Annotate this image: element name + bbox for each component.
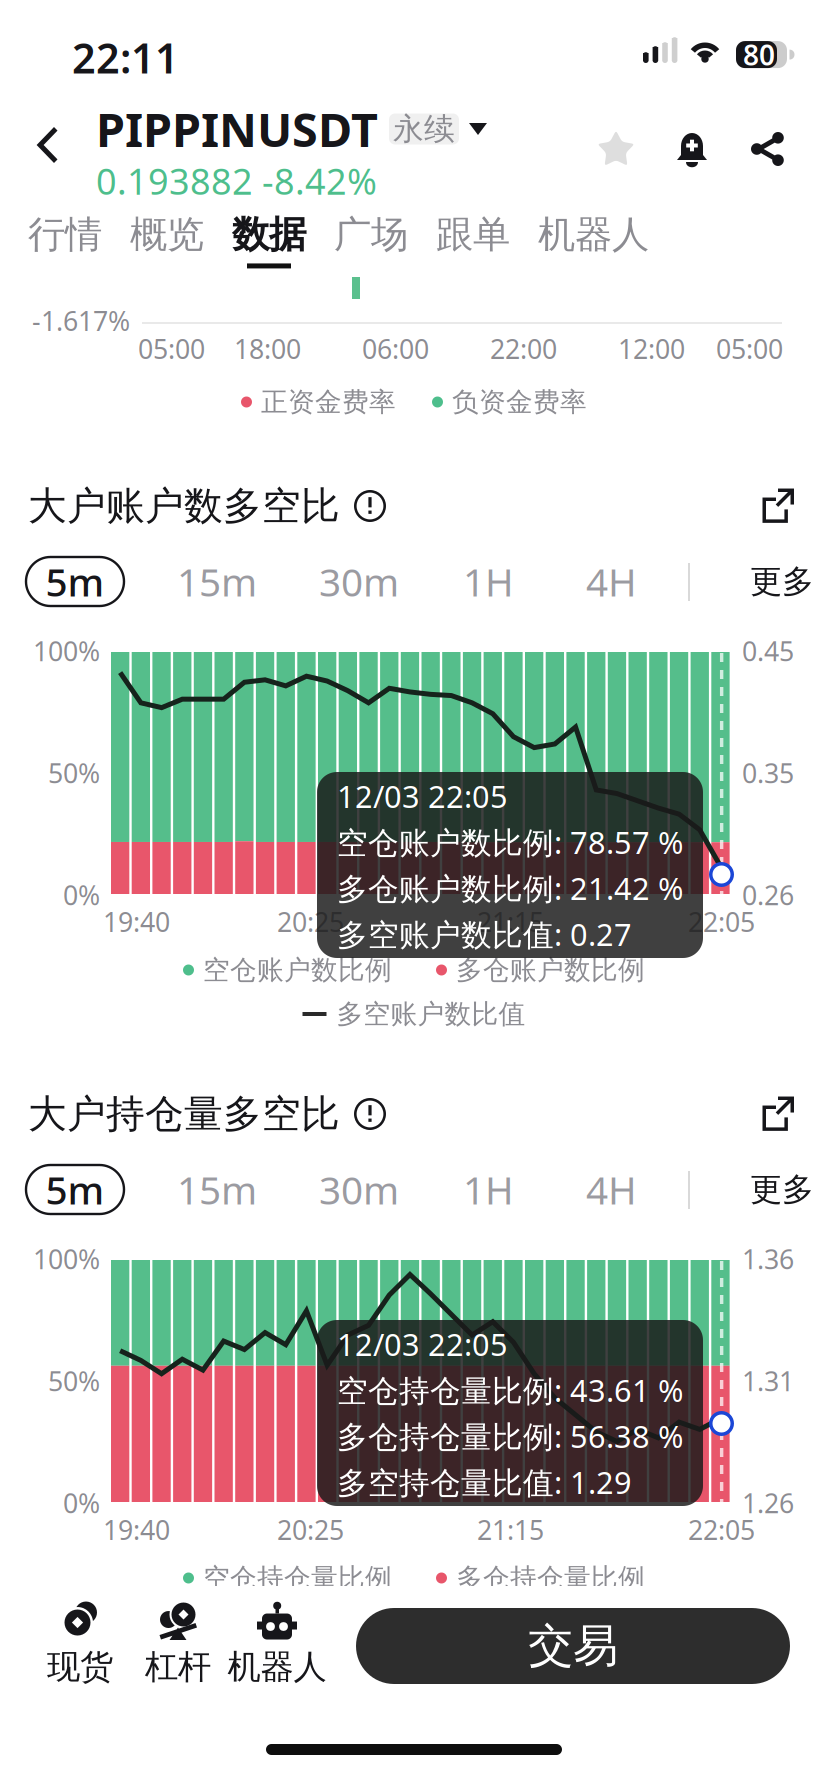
staticText: 100%	[33, 1241, 100, 1277]
staticText: 机器人	[227, 1646, 326, 1687]
staticText: 0%	[63, 877, 100, 913]
staticText: 20:25	[277, 904, 344, 939]
button[interactable]: 交易	[356, 1608, 790, 1684]
staticText: 19:40	[103, 904, 170, 939]
button[interactable]: Expand chart	[761, 1095, 796, 1133]
staticText: 永续	[393, 110, 455, 148]
staticText: PIPPINUSDT	[96, 98, 378, 160]
button[interactable]: Add to favorites	[595, 128, 637, 170]
button[interactable]: 杠杆	[118, 1601, 238, 1687]
button[interactable]: 1H	[463, 557, 514, 606]
button[interactable]: Share	[751, 132, 785, 166]
staticText: 空仓账户数比例: 78.57 %	[337, 822, 683, 862]
staticText: 跟单	[436, 212, 510, 257]
staticText: 1H	[463, 556, 514, 607]
staticText: 0%	[63, 1485, 100, 1521]
button[interactable]: Price alert	[671, 128, 713, 170]
button[interactable]: 行情	[28, 212, 102, 268]
button[interactable]: 5m	[26, 1165, 124, 1214]
staticText: 22:00	[490, 331, 557, 366]
button[interactable]: 30m	[319, 557, 399, 606]
button[interactable]: 数据	[232, 212, 306, 268]
staticText: 80	[743, 36, 775, 73]
button[interactable]: 15m	[177, 557, 257, 606]
staticText: -1.617%	[32, 303, 130, 338]
staticText: 多仓持仓量比例	[456, 1562, 645, 1594]
button[interactable]: 跟单	[436, 212, 510, 268]
button[interactable]: 更多	[750, 1165, 814, 1214]
button[interactable]: 机器人	[538, 212, 649, 268]
button[interactable]: Back	[32, 125, 62, 165]
staticText: 0.45	[742, 633, 794, 669]
staticText: 5m	[45, 556, 104, 607]
staticText: 12/03 22:05	[337, 1324, 508, 1364]
staticText: 广场	[334, 212, 408, 257]
staticText: 1.31	[742, 1363, 794, 1399]
button[interactable]: 概览	[130, 212, 204, 268]
staticText: 1.36	[742, 1241, 794, 1277]
staticText: 15m	[177, 556, 257, 607]
staticText: 15m	[177, 1164, 257, 1215]
button[interactable]: 更多	[750, 557, 814, 606]
button[interactable]: 1H	[463, 1165, 514, 1214]
staticText: 21:15	[477, 904, 544, 939]
button[interactable]: 4H	[586, 557, 637, 606]
staticText: 多仓账户数比例: 21.42 %	[337, 868, 683, 908]
staticText: 30m	[319, 1164, 399, 1215]
staticText: 更多	[750, 1170, 814, 1209]
staticText: 5m	[45, 1164, 104, 1215]
staticText: 空仓持仓量比例	[203, 1562, 392, 1594]
staticText: 现货	[47, 1646, 113, 1687]
staticText: 空仓账户数比例	[203, 954, 392, 986]
button[interactable]: Expand chart	[761, 487, 796, 525]
staticText: 05:00	[716, 331, 783, 366]
staticText: 行情	[28, 212, 102, 257]
staticText: 50%	[48, 1363, 100, 1399]
staticText: 21:15	[477, 1512, 544, 1547]
staticText: 多空账户数比值	[336, 998, 525, 1030]
staticText: 06:00	[362, 331, 429, 366]
staticText: 50%	[48, 755, 100, 791]
staticText: 正资金费率	[261, 386, 396, 418]
staticText: 22:05	[688, 904, 755, 939]
button[interactable]: 广场	[334, 212, 408, 268]
staticText: 4H	[586, 1164, 637, 1215]
button[interactable]: 现货	[20, 1601, 140, 1687]
staticText: 多仓持仓量比例: 56.38 %	[337, 1416, 683, 1456]
button[interactable]: 30m	[319, 1165, 399, 1214]
staticText: 大户账户数多空比	[28, 482, 340, 530]
staticText: 1.26	[742, 1485, 794, 1521]
staticText: 05:00	[138, 331, 205, 366]
staticText: 概览	[130, 212, 204, 257]
staticText: 杠杆	[145, 1646, 211, 1687]
staticText: 20:25	[277, 1512, 344, 1547]
staticText: 0.193882 -8.42%	[96, 157, 377, 205]
button[interactable]: 15m	[177, 1165, 257, 1214]
staticText: 0.35	[742, 755, 794, 791]
staticText: 100%	[33, 633, 100, 669]
button[interactable]: 4H	[586, 1165, 637, 1214]
staticText: 机器人	[538, 212, 649, 257]
staticText: 22:05	[688, 1512, 755, 1547]
staticText: 12:00	[618, 331, 685, 366]
staticText: 交易	[528, 1618, 618, 1674]
staticText: 多仓账户数比例	[456, 954, 645, 986]
staticText: 更多	[750, 562, 814, 601]
staticText: 12/03 22:05	[337, 776, 508, 816]
button[interactable]: 机器人	[217, 1601, 337, 1687]
staticText: 1H	[463, 1164, 514, 1215]
staticText: 多空持仓量比值: 1.29	[337, 1462, 632, 1502]
staticText: 0.26	[742, 877, 794, 913]
staticText: 空仓持仓量比例: 43.61 %	[337, 1370, 683, 1410]
staticText: 19:40	[103, 1512, 170, 1547]
staticText: 18:00	[234, 331, 301, 366]
staticText: 4H	[586, 556, 637, 607]
staticText: 30m	[319, 556, 399, 607]
staticText: 大户持仓量多空比	[28, 1090, 340, 1138]
staticText: 多空账户数比值: 0.27	[337, 914, 632, 954]
staticText: 22:11	[72, 30, 179, 85]
staticText: 负资金费率	[452, 386, 587, 418]
staticText: 数据	[232, 212, 306, 257]
button[interactable]: 5m	[26, 557, 124, 606]
